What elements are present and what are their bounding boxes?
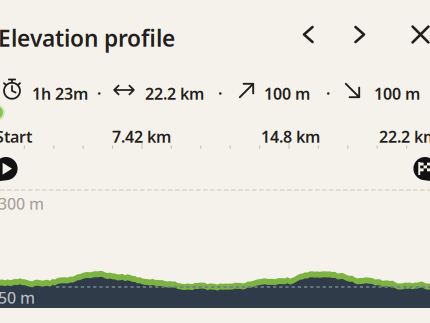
button[interactable]: Play route: [0, 156, 19, 184]
staticText: 100 m: [374, 83, 420, 104]
button[interactable]: Route finish: [412, 156, 430, 184]
staticText: 22.2 km: [379, 126, 430, 147]
staticText: Elevation profile: [0, 23, 175, 53]
staticText: 100 m: [264, 83, 310, 104]
staticText: 300 m: [0, 193, 44, 214]
staticText: ·: [218, 83, 222, 104]
staticText: ·: [326, 83, 330, 104]
button[interactable]: Previous: [300, 24, 318, 45]
staticText: ·: [97, 83, 101, 104]
staticText: 14.8 km: [261, 126, 320, 147]
button[interactable]: Next: [350, 24, 368, 45]
staticText: 7.42 km: [112, 126, 171, 147]
button[interactable]: Close: [411, 25, 430, 44]
staticText: 1h 23m: [32, 83, 88, 104]
staticText: 50 m: [0, 287, 35, 308]
staticText: Start: [0, 126, 32, 147]
staticText: 22.2 km: [145, 83, 204, 104]
